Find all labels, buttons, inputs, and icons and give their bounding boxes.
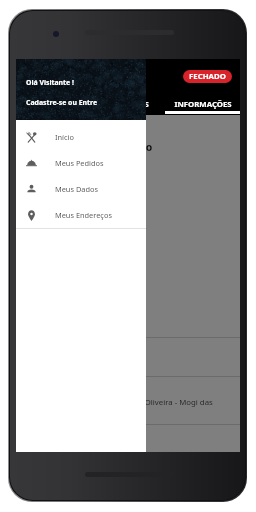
staticText: Cadastre-se ou Entre: [26, 98, 98, 107]
staticText: Olá Visitante !: [26, 78, 74, 87]
staticText: PRODUTOS: [106, 99, 149, 110]
button[interactable]: CARDÁPIO: [16, 98, 90, 111]
staticText: Início: [55, 132, 74, 142]
button[interactable]: FECHADO: [183, 70, 232, 83]
button[interactable]: Meus Pedidos: [16, 150, 146, 176]
button[interactable]: Meus Endereços: [16, 202, 146, 228]
button[interactable]: Início: [16, 124, 146, 150]
staticText: INFORMAÇÕES: [174, 99, 232, 110]
button[interactable]: INFORMAÇÕES: [165, 98, 240, 111]
button[interactable]: PRODUTOS: [90, 98, 165, 111]
staticText: CARDÁPIO: [33, 99, 74, 110]
staticText: Meus Pedidos: [55, 158, 104, 168]
staticText: Rua Marechal Deodoro, 18 - Vila Oliveira…: [26, 397, 213, 408]
button[interactable]: Meus Dados: [16, 176, 146, 202]
staticText: FECHADO: [189, 71, 226, 82]
staticText: Meus Endereços: [55, 210, 112, 220]
staticText: Meus Dados: [55, 184, 98, 194]
staticText: Restaurante Sabor Mino: [26, 140, 153, 154]
button[interactable]: Cadastre-se ou Entre: [16, 95, 146, 111]
